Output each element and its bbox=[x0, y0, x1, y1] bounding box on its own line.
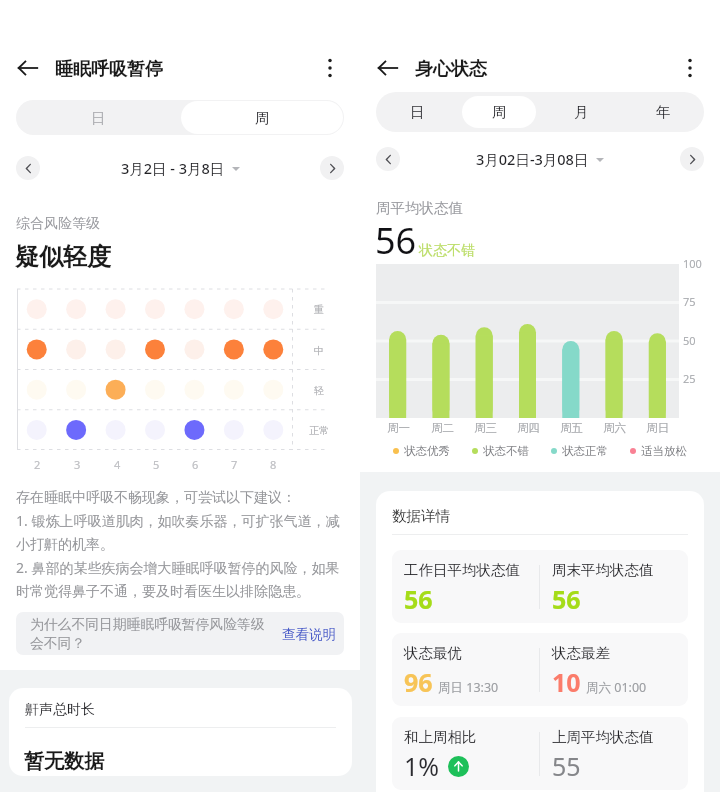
staticText: 周六 bbox=[603, 421, 626, 435]
staticText: 5 bbox=[153, 457, 160, 472]
button[interactable]: 年 bbox=[626, 96, 700, 128]
staticText: 鼾声总时长 bbox=[25, 701, 95, 719]
button[interactable]: More options bbox=[314, 52, 346, 84]
staticText: 7 bbox=[231, 457, 238, 472]
staticText: 6 bbox=[192, 457, 199, 472]
staticText: 8 bbox=[270, 457, 277, 472]
staticText: 身心状态 bbox=[415, 58, 487, 81]
staticText: 周日 13:30 bbox=[438, 679, 499, 696]
staticText: 10 bbox=[552, 665, 581, 699]
staticText: 3月02日-3月08日 bbox=[476, 149, 589, 169]
button[interactable]: Previous period bbox=[376, 147, 400, 171]
staticText: 存在睡眠中呼吸不畅现象，可尝试以下建议： 1. 锻炼上呼吸道肌肉，如吹奏乐器，可… bbox=[16, 489, 344, 600]
staticText: 周三 bbox=[474, 421, 497, 435]
staticText: 和上周相比 bbox=[404, 728, 477, 746]
button[interactable]: Back bbox=[372, 52, 404, 84]
staticText: 疑似轻度 bbox=[15, 242, 111, 272]
staticText: 56 bbox=[404, 582, 433, 616]
staticText: 状态最差 bbox=[552, 644, 610, 662]
staticText: 56 bbox=[552, 582, 581, 616]
staticText: 状态不错 bbox=[419, 242, 475, 260]
button[interactable]: Back bbox=[12, 52, 44, 84]
button[interactable]: 日 bbox=[380, 96, 454, 128]
staticText: 适当放松 bbox=[641, 444, 687, 458]
staticText: 周一 bbox=[387, 421, 410, 435]
staticText: 周 bbox=[255, 109, 270, 127]
button[interactable]: 周 bbox=[462, 96, 536, 128]
button[interactable]: 周 bbox=[181, 101, 343, 134]
staticText: 75 bbox=[683, 294, 696, 309]
staticText: 周二 bbox=[431, 421, 454, 435]
staticText: 周日 bbox=[646, 421, 669, 435]
staticText: 暂无数据 bbox=[24, 749, 104, 774]
staticText: 3 bbox=[74, 457, 81, 472]
button[interactable]: Previous period bbox=[16, 156, 40, 180]
staticText: 轻 bbox=[314, 384, 324, 397]
staticText: 重 bbox=[314, 303, 324, 316]
button[interactable]: Next period bbox=[320, 156, 344, 180]
button[interactable]: 为什么不同日期睡眠呼吸暂停风险等级会不同？ bbox=[16, 612, 344, 655]
staticText: 1% bbox=[404, 749, 440, 783]
staticText: 数据详情 bbox=[392, 507, 450, 525]
staticText: 周平均状态值 bbox=[376, 199, 463, 217]
staticText: 周四 bbox=[517, 421, 540, 435]
staticText: 工作日平均状态值 bbox=[404, 561, 520, 579]
staticText: 100 bbox=[683, 256, 702, 271]
staticText: 96 bbox=[404, 665, 433, 699]
button[interactable]: More options bbox=[674, 52, 706, 84]
button[interactable]: 日 bbox=[17, 101, 179, 134]
staticText: 周末平均状态值 bbox=[552, 561, 654, 579]
staticText: 3月2日 - 3月8日 bbox=[121, 158, 225, 178]
staticText: 2 bbox=[34, 457, 41, 472]
staticText: 为什么不同日期睡眠呼吸暂停风险等级会不同？ bbox=[30, 616, 270, 652]
staticText: 周五 bbox=[560, 421, 583, 435]
staticText: 4 bbox=[114, 457, 121, 472]
button[interactable]: 月 bbox=[544, 96, 618, 128]
staticText: 月 bbox=[574, 103, 589, 121]
staticText: 55 bbox=[552, 749, 581, 783]
staticText: 状态正常 bbox=[562, 444, 608, 458]
staticText: 状态优秀 bbox=[404, 444, 450, 458]
staticText: 日 bbox=[410, 103, 425, 121]
staticText: 状态不错 bbox=[483, 444, 529, 458]
staticText: 睡眠呼吸暂停 bbox=[55, 58, 163, 81]
staticText: 上周平均状态值 bbox=[552, 728, 654, 746]
staticText: 56 bbox=[375, 216, 417, 265]
button[interactable]: Next period bbox=[680, 147, 704, 171]
staticText: 周 bbox=[492, 103, 507, 121]
staticText: 正常 bbox=[309, 424, 329, 437]
staticText: 25 bbox=[683, 371, 696, 386]
staticText: 50 bbox=[683, 333, 696, 348]
staticText: 中 bbox=[314, 344, 324, 357]
staticText: 周六 01:00 bbox=[586, 679, 647, 696]
staticText: 状态最优 bbox=[404, 644, 462, 662]
staticText: 日 bbox=[91, 109, 106, 127]
staticText: 查看说明 bbox=[282, 626, 336, 643]
staticText: 年 bbox=[656, 103, 671, 121]
staticText: 综合风险等级 bbox=[16, 215, 100, 233]
